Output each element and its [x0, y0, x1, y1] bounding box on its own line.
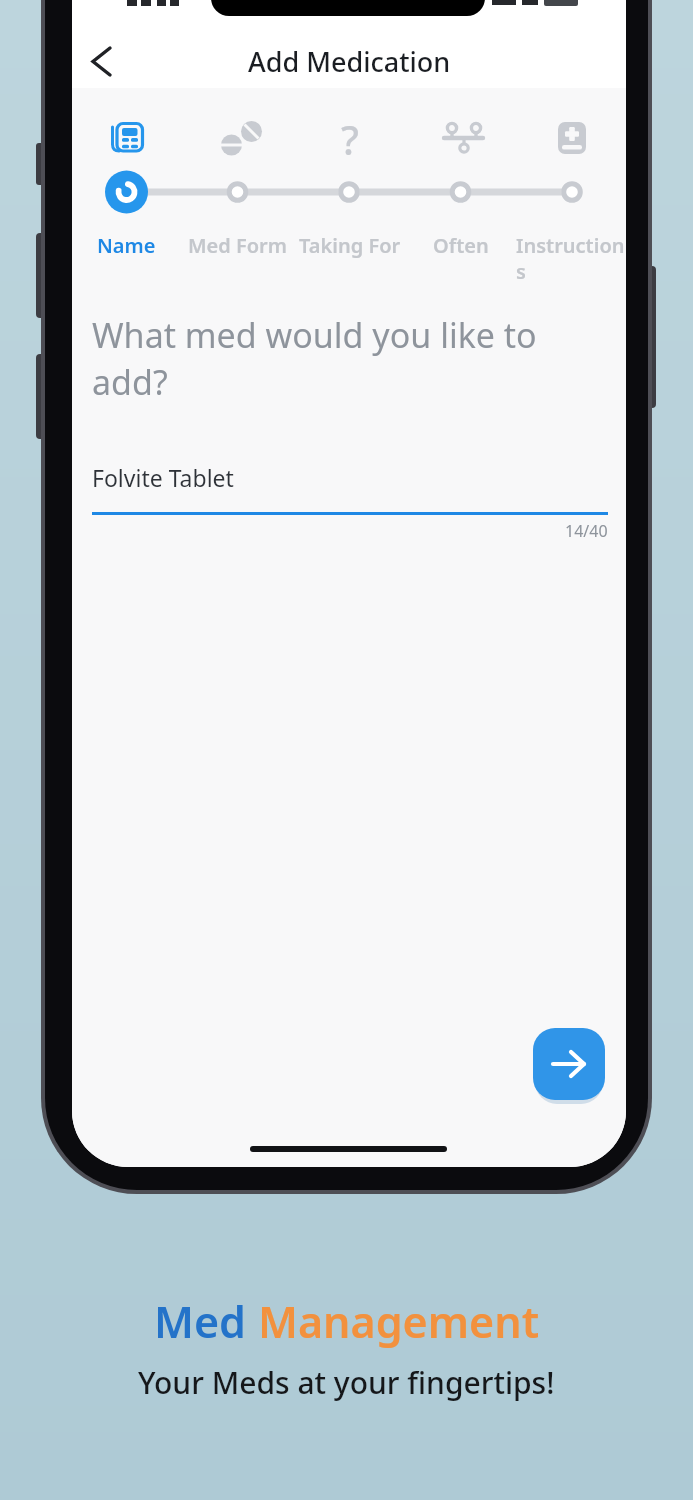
staticText: Folvite Tablet — [92, 462, 234, 493]
staticText: Med Form — [188, 232, 287, 259]
button[interactable] — [87, 35, 117, 88]
button[interactable]: Folvite Tablet — [92, 440, 608, 530]
staticText: Management — [258, 1292, 540, 1351]
button[interactable]: Add Medication — [72, 35, 626, 88]
staticText: 14/40 — [565, 520, 608, 542]
staticText: ? — [341, 112, 359, 166]
staticText: Your Meds at your fingertips! — [138, 1362, 555, 1403]
staticText: Instruction — [516, 232, 625, 259]
staticText: Often — [433, 232, 489, 259]
button[interactable] — [533, 1028, 605, 1100]
staticText: s — [516, 258, 526, 285]
staticText: Taking For — [299, 232, 401, 259]
staticText: Add Medication — [248, 43, 451, 80]
staticText: What med would you like to add? — [92, 312, 537, 405]
staticText: Med — [154, 1292, 258, 1351]
staticText: Name — [97, 232, 156, 259]
